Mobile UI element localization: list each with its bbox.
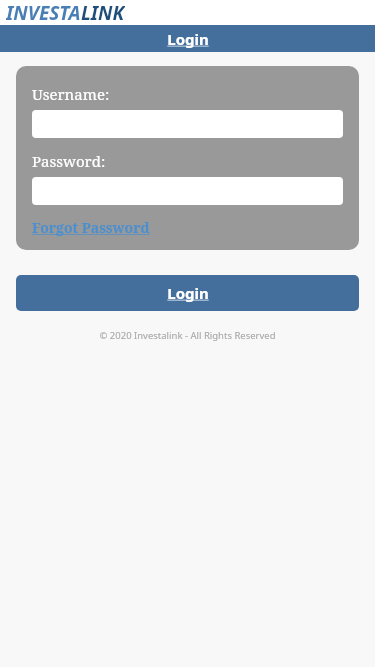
- staticText: Login: [167, 29, 209, 49]
- staticText: Forgot Password: [32, 218, 150, 237]
- staticText: LINK: [81, 0, 125, 25]
- staticText: INVESTA: [6, 0, 81, 25]
- button[interactable]: Forgot Password: [32, 218, 150, 237]
- staticText: © 2020 Investalink - All Rights Reserved: [99, 329, 276, 342]
- button[interactable]: [32, 177, 343, 205]
- staticText: Login: [167, 283, 209, 303]
- button[interactable]: Login: [16, 275, 359, 311]
- button[interactable]: [32, 110, 343, 138]
- staticText: Password:: [32, 151, 106, 171]
- staticText: Username:: [32, 84, 110, 104]
